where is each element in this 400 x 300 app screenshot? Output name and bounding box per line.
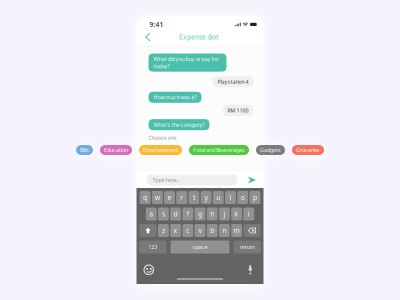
staticText: t [193, 193, 195, 202]
button[interactable]: v [195, 224, 205, 237]
button[interactable]: space [170, 240, 229, 253]
staticText: Education [104, 146, 128, 154]
staticText: What did you buy or pay for today? [153, 55, 218, 70]
button[interactable]: Emoji [141, 262, 156, 277]
button[interactable]: o [237, 191, 248, 204]
staticText: f [187, 210, 189, 218]
staticText: Groceries [296, 146, 320, 154]
staticText: 123 [148, 243, 157, 251]
button[interactable]: r [176, 191, 187, 204]
staticText: u [216, 193, 220, 202]
staticText: v [198, 226, 201, 235]
button[interactable]: x [170, 224, 181, 237]
button[interactable]: return [233, 240, 261, 253]
staticText: Bills [80, 146, 89, 154]
staticText: q [143, 193, 147, 202]
button[interactable]: Entertainment [139, 145, 182, 155]
button[interactable]: y [201, 191, 211, 204]
staticText: b [210, 226, 214, 235]
staticText: m [234, 226, 240, 235]
button[interactable]: g [195, 207, 205, 220]
staticText: Expense Bot [179, 33, 218, 41]
button[interactable]: a [146, 207, 157, 220]
button[interactable]: j [219, 207, 230, 220]
button[interactable]: p [249, 191, 260, 204]
staticText: i [229, 193, 231, 202]
staticText: e [167, 193, 171, 202]
button[interactable]: Education [100, 145, 132, 155]
button[interactable]: s [158, 207, 169, 220]
staticText: a [149, 210, 153, 218]
staticText: j [223, 210, 225, 218]
button[interactable]: Dictate [246, 263, 254, 276]
button[interactable]: q [140, 191, 150, 204]
button[interactable]: k [231, 207, 242, 220]
button[interactable]: b [207, 224, 218, 237]
button[interactable]: e [164, 191, 175, 204]
staticText: space [192, 243, 207, 251]
button[interactable]: Groceries [292, 145, 324, 155]
staticText: n [222, 226, 226, 235]
staticText: w [155, 193, 160, 202]
staticText: 9:41 [149, 20, 163, 29]
staticText: Type here.. [152, 176, 178, 184]
staticText: k [235, 210, 239, 218]
staticText: RM 1100 [227, 107, 248, 114]
button[interactable]: z [158, 224, 169, 237]
button[interactable]: Send [245, 174, 258, 186]
staticText: What's the category? [153, 121, 204, 128]
staticText: c [186, 226, 189, 235]
button[interactable]: Back [141, 30, 154, 44]
button[interactable]: 123 [139, 240, 166, 253]
staticText: return [240, 243, 255, 251]
button[interactable]: w [152, 191, 163, 204]
button[interactable]: n [219, 224, 230, 237]
staticText: Entertainment [143, 146, 178, 154]
staticText: g [198, 210, 202, 218]
button[interactable]: i [225, 191, 236, 204]
staticText: l [248, 210, 250, 218]
button[interactable]: m [231, 224, 242, 237]
button[interactable]: d [170, 207, 181, 220]
staticText: Gadgets [260, 146, 281, 154]
button[interactable]: h [207, 207, 218, 220]
staticText: p [253, 193, 257, 202]
staticText: d [174, 210, 178, 218]
button[interactable]: Delete [243, 224, 261, 237]
button[interactable]: Shift [139, 224, 157, 237]
staticText: Food and Beaverages [193, 146, 245, 154]
staticText: h [210, 210, 214, 218]
button[interactable]: f [182, 207, 193, 220]
button[interactable]: Bills [76, 145, 93, 155]
button[interactable]: u [213, 191, 224, 204]
button[interactable]: l [243, 207, 254, 220]
button[interactable]: t [188, 191, 199, 204]
staticText: z [162, 226, 165, 235]
button[interactable]: c [182, 224, 193, 237]
button[interactable]: Gadgets [256, 145, 285, 155]
staticText: x [174, 226, 178, 235]
staticText: y [205, 193, 208, 202]
staticText: Choose one [148, 134, 176, 141]
staticText: s [162, 210, 165, 218]
staticText: r [180, 193, 183, 202]
button[interactable]: Food and Beaverages [189, 145, 249, 155]
staticText: Playstation 4 [217, 78, 248, 85]
staticText: How much was it? [153, 94, 196, 101]
staticText: o [241, 193, 245, 202]
